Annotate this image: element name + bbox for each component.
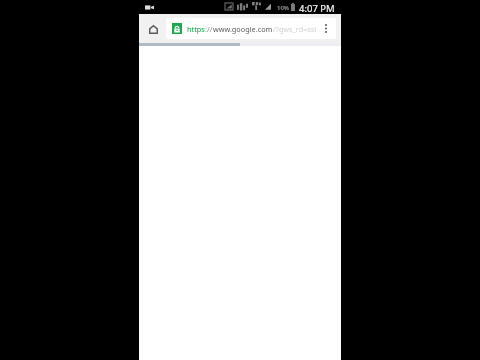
button[interactable]: https — [166, 18, 336, 39]
staticText: /?gws_rd=ssl — [273, 24, 317, 34]
button[interactable]: Home — [143, 15, 163, 44]
staticText: https — [187, 24, 205, 34]
staticText: www.google.com — [213, 24, 273, 34]
staticText: 4:07 PM — [299, 2, 335, 15]
staticText: 10% — [277, 4, 289, 12]
button[interactable]: More options — [317, 14, 334, 43]
staticText: :// — [205, 24, 213, 34]
